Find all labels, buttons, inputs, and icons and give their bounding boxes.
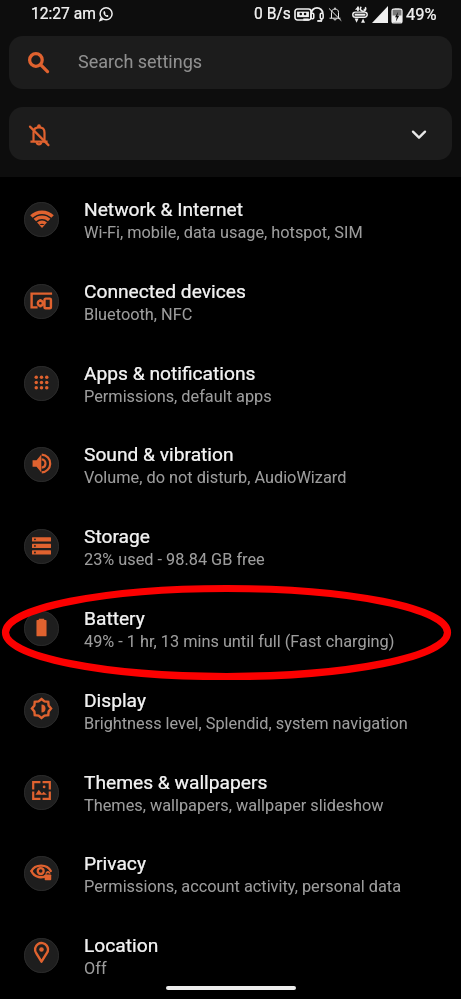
button[interactable]: Sound & vibration <box>0 423 461 505</box>
staticText: Connected devices <box>84 280 246 303</box>
staticText: Volume, do not disturb, AudioWizard <box>84 468 347 487</box>
button[interactable]: Themes & wallpapers <box>0 751 461 833</box>
button[interactable]: Connected devices <box>0 260 461 342</box>
staticText: Apps & notifications <box>84 362 256 385</box>
staticText: Network & Internet <box>84 198 243 221</box>
other: Expand <box>412 130 426 139</box>
staticText: Display <box>84 689 146 712</box>
staticText: 49% - 1 hr, 13 mins until full (Fast cha… <box>84 632 395 651</box>
staticText: Location <box>84 934 159 957</box>
staticText: 23% used - 98.84 GB free <box>84 550 265 569</box>
staticText: Themes, wallpapers, wallpaper slideshow <box>84 796 384 815</box>
staticText: Sound & vibration <box>84 443 234 466</box>
button[interactable]: Battery <box>0 587 461 669</box>
button[interactable]: Network & Internet <box>0 178 461 260</box>
button[interactable]: Display <box>0 669 461 751</box>
button[interactable]: Location <box>0 914 461 996</box>
staticText: Wi-Fi, mobile, data usage, hotspot, SIM <box>84 223 363 242</box>
staticText: Storage <box>84 525 150 548</box>
other: Do not disturb is off <box>28 124 50 146</box>
button[interactable]: Apps & notifications <box>0 342 461 424</box>
button[interactable]: Privacy <box>0 832 461 914</box>
staticText: 0 B/s <box>254 5 291 23</box>
staticText: Off <box>84 959 107 978</box>
staticText: 12:27 am <box>31 5 96 23</box>
staticText: Permissions, account activity, personal … <box>84 877 402 896</box>
staticText: Themes & wallpapers <box>84 771 268 794</box>
staticText: Permissions, default apps <box>84 387 272 406</box>
staticText: Privacy <box>84 852 146 875</box>
staticText: Search settings <box>78 51 203 72</box>
staticText: Battery <box>84 607 145 630</box>
staticText: Bluetooth, NFC <box>84 305 193 324</box>
staticText: Brightness level, Splendid, system navig… <box>84 714 408 733</box>
staticText: 49% <box>406 5 437 24</box>
button[interactable]: Storage <box>0 505 461 587</box>
button[interactable]: Do not disturb is off <box>9 107 452 160</box>
button[interactable]: Search settings <box>9 36 452 89</box>
